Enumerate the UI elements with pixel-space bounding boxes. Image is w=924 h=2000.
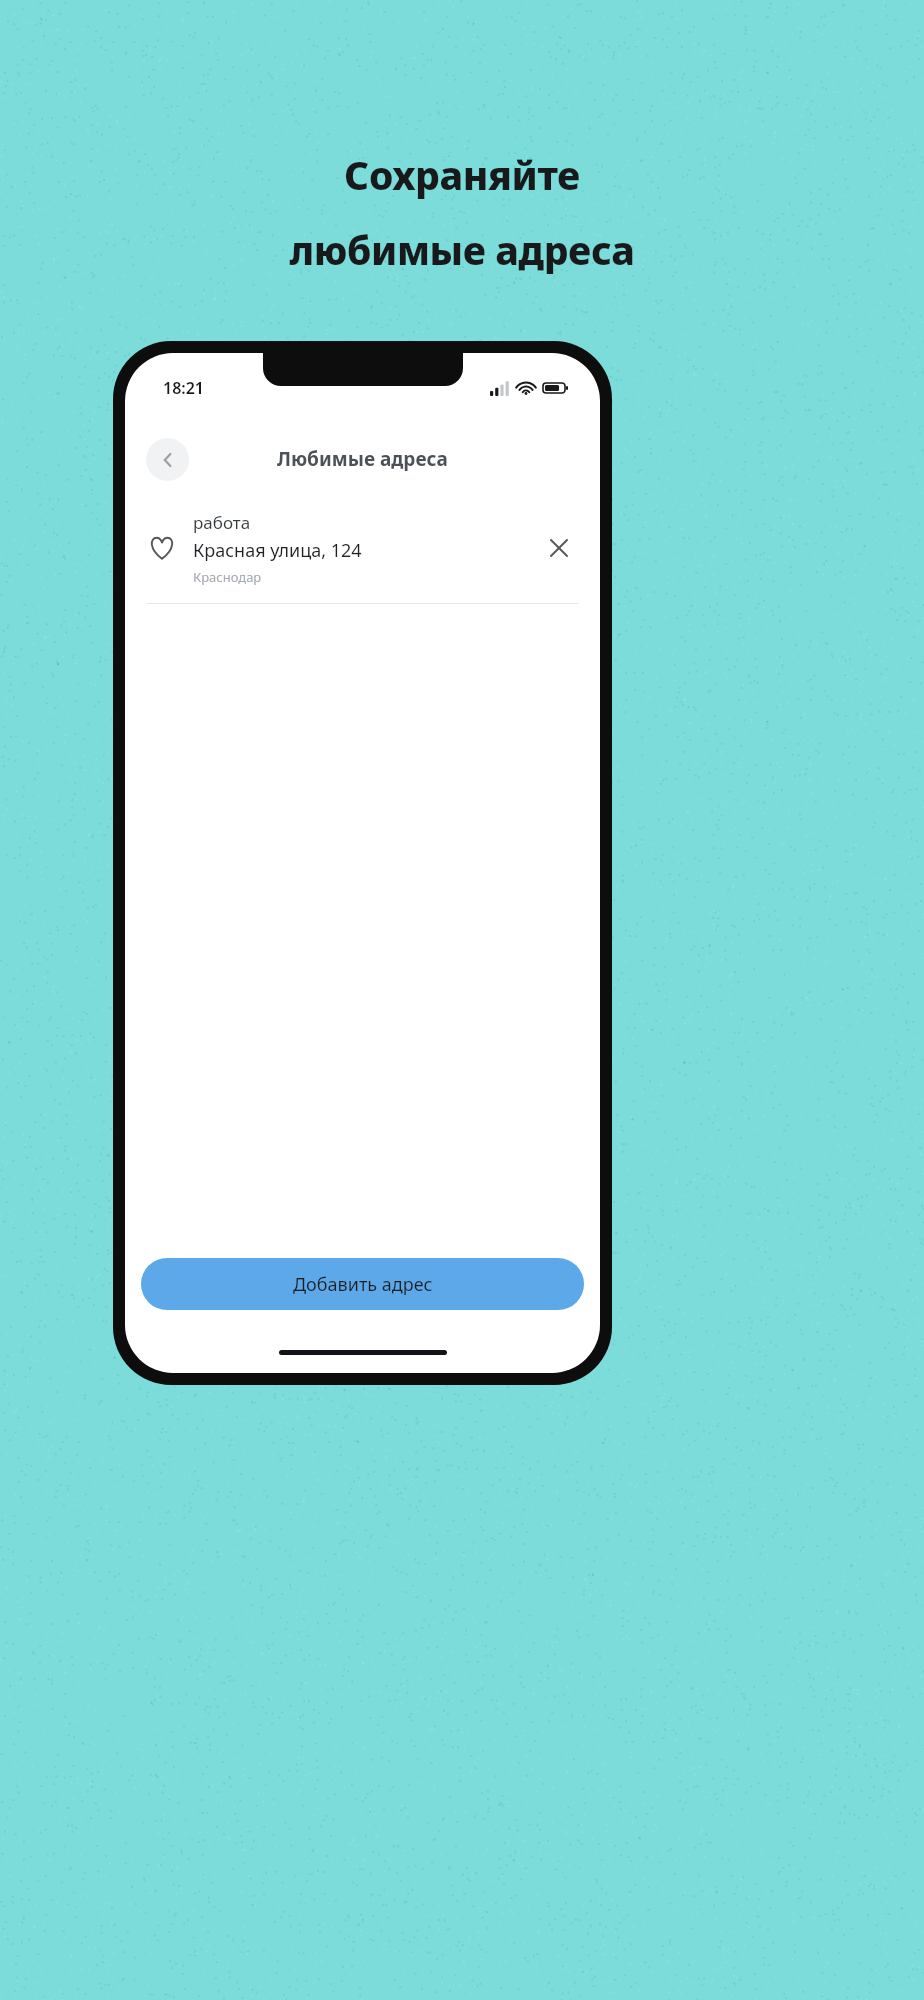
button[interactable]: работа (125, 493, 600, 603)
button[interactable]: Назад (146, 438, 189, 481)
staticText: любимые адреса (289, 223, 635, 276)
staticText: Добавить адрес (293, 1272, 433, 1297)
button[interactable]: Удалить адрес (536, 525, 582, 571)
staticText: Любимые адреса (277, 446, 448, 472)
staticText: Красная улица, 124 (193, 538, 362, 563)
staticText: работа (193, 511, 251, 534)
staticText: 18:21 (163, 377, 205, 399)
staticText: Сохраняйте (344, 148, 580, 201)
button[interactable]: Добавить адрес (141, 1258, 584, 1310)
staticText: Краснодар (193, 568, 262, 586)
